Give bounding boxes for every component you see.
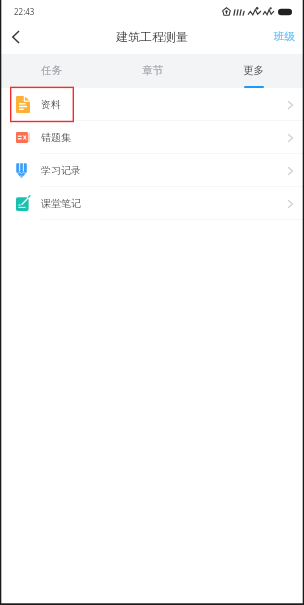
staticText: 建筑工程测量 (116, 29, 188, 44)
staticText: 任务 (41, 64, 62, 77)
button[interactable]: 章节 (102, 54, 203, 88)
button[interactable]: 学习记录 (0, 154, 304, 187)
button[interactable]: 更多 (203, 54, 304, 88)
staticText: 资料 (41, 98, 61, 111)
staticText: 更多 (243, 64, 264, 77)
staticText: 章节 (142, 64, 163, 77)
staticText: 课堂笔记 (41, 197, 81, 210)
staticText: 错题集 (41, 131, 71, 144)
staticText: 22:43 (14, 6, 35, 17)
staticText: 学习记录 (41, 164, 81, 177)
button[interactable]: 课堂笔记 (0, 187, 304, 220)
button[interactable]: Back (0, 19, 30, 54)
button[interactable]: 班级 (264, 19, 304, 54)
button[interactable]: 错题集 (0, 121, 304, 154)
staticText: 班级 (274, 30, 295, 43)
button[interactable]: 任务 (0, 54, 102, 88)
button[interactable]: 资料 (0, 88, 304, 121)
